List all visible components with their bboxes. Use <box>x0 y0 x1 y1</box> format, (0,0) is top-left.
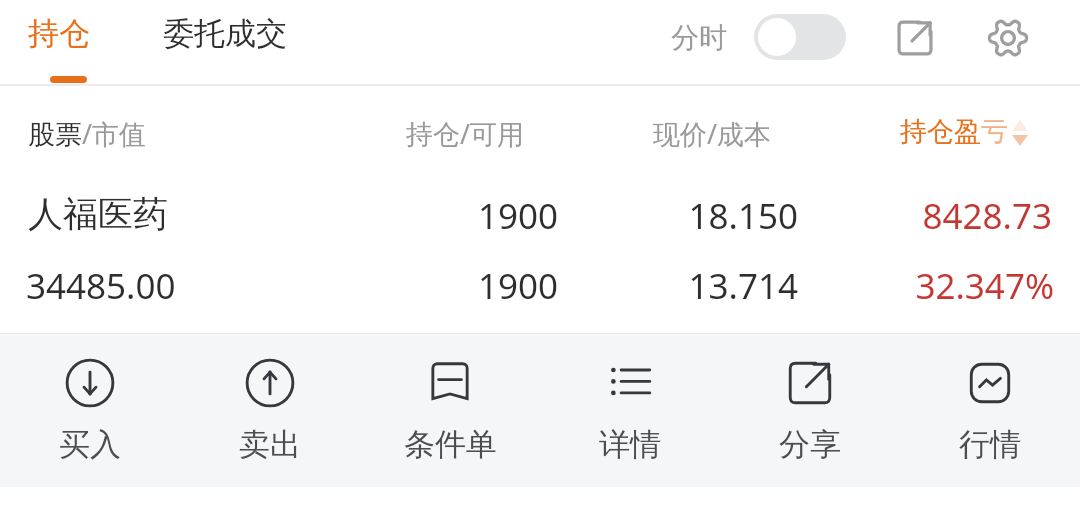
staticText: 34485.00 <box>26 262 358 310</box>
staticText: 条件单 <box>404 425 497 464</box>
button[interactable]: 条件单 <box>360 333 540 487</box>
button[interactable]: 持仓盈亏 <box>900 110 1029 149</box>
button[interactable]: 卖出 <box>180 333 360 487</box>
button[interactable]: 委托成交 <box>153 6 297 61</box>
staticText: 分享 <box>779 425 841 464</box>
staticText: 委托成交 <box>163 14 287 53</box>
staticText: 持仓 <box>28 14 90 53</box>
staticText: 人福医药 <box>28 192 358 236</box>
button[interactable]: 详情 <box>540 333 720 487</box>
staticText: 32.347% <box>798 262 1054 310</box>
staticText: 持仓盈亏 <box>900 115 1008 149</box>
staticText: 13.714 <box>558 262 798 310</box>
staticText: 分时 <box>671 20 727 55</box>
staticText: 1900 <box>358 262 558 310</box>
staticText: 持仓/可用 <box>406 115 525 152</box>
button[interactable]: 人福医药 <box>0 178 1080 323</box>
button[interactable]: 持仓 <box>18 6 100 61</box>
staticText: 卖出 <box>239 425 301 464</box>
staticText: 现价/成本 <box>653 115 772 152</box>
button[interactable]: Settings <box>978 8 1038 68</box>
staticText: 买入 <box>59 425 121 464</box>
staticText: 详情 <box>599 425 661 464</box>
staticText: 8428.73 <box>798 192 1052 240</box>
button[interactable]: Open external <box>885 8 945 68</box>
staticText: 1900 <box>358 192 558 240</box>
button[interactable]: 行情 <box>900 333 1080 487</box>
button[interactable]: 分时 toggle <box>754 14 846 60</box>
button[interactable]: 买入 <box>0 333 180 487</box>
staticText: 18.150 <box>558 192 798 240</box>
staticText: 行情 <box>959 425 1021 464</box>
staticText: 股票/市值 <box>28 115 147 152</box>
button[interactable]: 分享 <box>720 333 900 487</box>
